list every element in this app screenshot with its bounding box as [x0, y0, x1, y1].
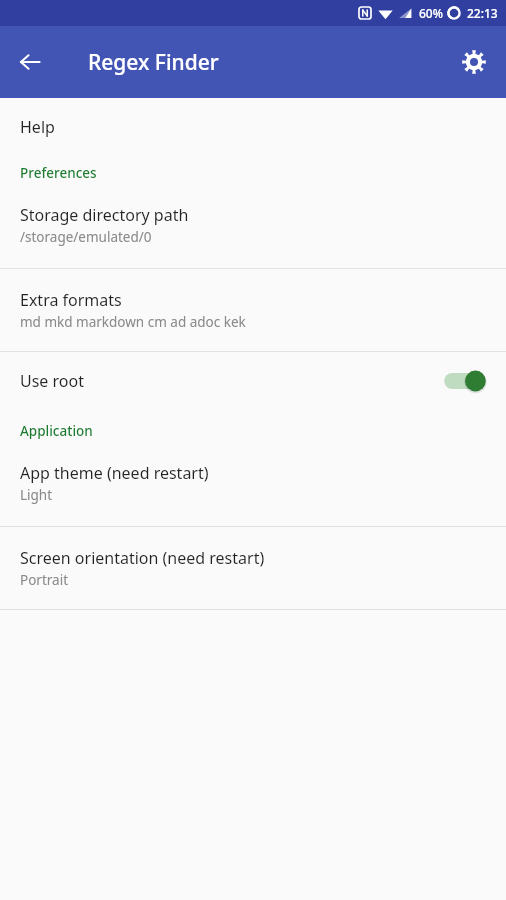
button[interactable]: Screen orientation (need restart): [0, 547, 506, 589]
staticText: Storage directory path: [20, 204, 189, 226]
staticText: /storage/emulated/0: [20, 228, 152, 246]
staticText: 60%: [419, 5, 443, 21]
staticText: Preferences: [20, 164, 97, 182]
staticText: Help: [20, 116, 55, 138]
staticText: Application: [20, 422, 93, 440]
staticText: Light: [20, 486, 53, 504]
staticText: Screen orientation (need restart): [20, 547, 265, 569]
staticText: App theme (need restart): [20, 462, 209, 484]
staticText: md mkd markdown cm ad adoc kek: [20, 313, 246, 331]
button[interactable]: Back: [6, 38, 54, 86]
staticText: Use root: [20, 370, 442, 392]
staticText: Portrait: [20, 571, 69, 589]
staticText: Regex Finder: [88, 48, 219, 77]
button[interactable]: Help: [0, 106, 506, 148]
button[interactable]: Settings: [450, 38, 498, 86]
button[interactable]: Extra formats: [0, 289, 506, 331]
staticText: 22:13: [467, 5, 498, 21]
button[interactable]: App theme (need restart): [0, 462, 506, 504]
button[interactable]: Use root: [0, 352, 506, 410]
staticText: Extra formats: [20, 289, 122, 311]
button[interactable]: Storage directory path: [0, 204, 506, 246]
